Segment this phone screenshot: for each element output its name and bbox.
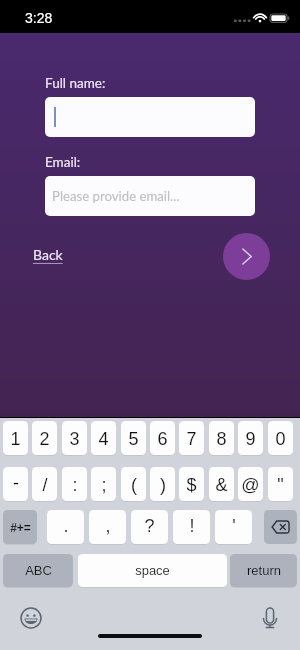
staticText: 3:28 [25, 10, 53, 26]
staticText: 7 [186, 429, 197, 449]
staticText: 2 [39, 429, 50, 449]
staticText: 8 [216, 429, 227, 449]
staticText: 4 [98, 429, 109, 449]
staticText: / [42, 475, 48, 495]
staticText: ! [189, 516, 195, 536]
staticText: ? [144, 516, 155, 536]
button[interactable]: $ [179, 467, 204, 501]
staticText: @ [241, 475, 260, 495]
button[interactable]: 7 [179, 421, 204, 455]
button[interactable]: " [268, 467, 293, 501]
staticText: " [277, 475, 284, 495]
staticText: 3 [69, 429, 80, 449]
button[interactable]: 4 [91, 421, 116, 455]
staticText: Please provide email... [52, 188, 180, 204]
button[interactable]: return [230, 554, 297, 587]
button[interactable]: Emoji keyboard [19, 606, 43, 630]
staticText: Back [33, 246, 63, 263]
button[interactable]: , [89, 510, 126, 544]
button[interactable]: 1 [3, 421, 28, 455]
button[interactable]: ) [150, 467, 175, 501]
staticText: , [105, 516, 111, 536]
staticText: ( [131, 475, 137, 495]
button[interactable]: . [47, 510, 84, 544]
staticText: return [247, 563, 281, 578]
staticText: . [63, 516, 69, 536]
staticText: 9 [245, 429, 256, 449]
button[interactable]: ? [131, 510, 168, 544]
staticText: ' [232, 516, 236, 536]
button[interactable]: Next [223, 233, 270, 280]
staticText: #+= [10, 521, 31, 534]
button[interactable]: / [32, 467, 57, 501]
button[interactable]: @ [238, 467, 263, 501]
button[interactable]: - [3, 467, 28, 501]
staticText: $ [186, 475, 197, 495]
button[interactable]: 3 [62, 421, 87, 455]
staticText: & [215, 475, 228, 495]
staticText: space [135, 563, 170, 578]
button[interactable]: ( [121, 467, 146, 501]
staticText: 1 [10, 429, 21, 449]
button[interactable]: Please provide email... [45, 176, 255, 216]
staticText: : [72, 475, 78, 495]
button[interactable]: ABC [3, 554, 73, 587]
button[interactable]: ! [173, 510, 210, 544]
button[interactable]: Back [33, 246, 63, 263]
button[interactable]: 9 [238, 421, 263, 455]
staticText: 6 [157, 429, 168, 449]
button[interactable]: 0 [268, 421, 293, 455]
button[interactable]: : [62, 467, 87, 501]
button[interactable]: 8 [209, 421, 234, 455]
button[interactable]: Dictate [258, 605, 282, 631]
staticText: Full name: [45, 75, 106, 91]
staticText: 0 [275, 429, 286, 449]
button[interactable]: 2 [32, 421, 57, 455]
button[interactable]: & [209, 467, 234, 501]
staticText: - [13, 473, 19, 493]
staticText: 5 [128, 429, 139, 449]
button[interactable]: 5 [121, 421, 146, 455]
button[interactable]: #+= [3, 510, 37, 544]
button[interactable]: space [78, 554, 227, 587]
staticText: ABC [25, 563, 52, 578]
button[interactable]: Backspace [264, 510, 297, 544]
staticText: ; [101, 475, 107, 495]
button[interactable]: 6 [150, 421, 175, 455]
button[interactable] [45, 97, 255, 137]
staticText: Email: [45, 154, 81, 170]
button[interactable]: ' [215, 510, 252, 544]
button[interactable]: ; [91, 467, 116, 501]
staticText: ) [160, 475, 166, 495]
